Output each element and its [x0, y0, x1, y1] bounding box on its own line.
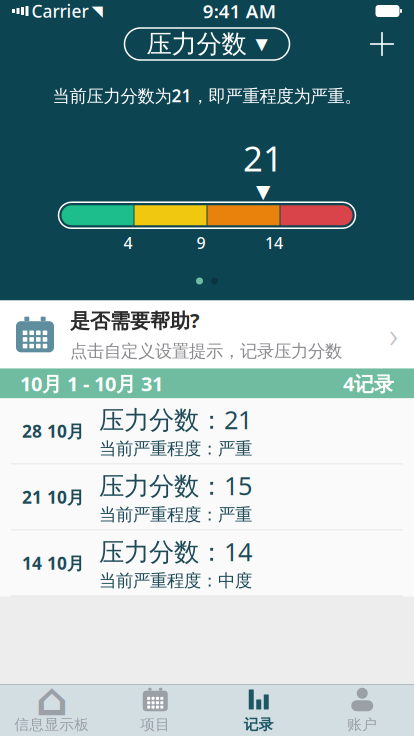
button[interactable]: 28 10月: [0, 398, 414, 463]
staticText: ▼: [255, 35, 267, 53]
staticText: 21 10月: [22, 485, 84, 508]
button[interactable]: 压力分数: [124, 28, 289, 60]
button[interactable]: 21 10月: [0, 464, 414, 529]
staticText: 是否需要帮助?: [70, 307, 200, 334]
staticText: 记录: [244, 715, 274, 733]
staticText: 14 10月: [22, 551, 84, 574]
staticText: 28 10月: [22, 419, 84, 442]
staticText: ⌂: [36, 674, 68, 725]
staticText: 4: [123, 232, 132, 253]
staticText: ›: [389, 311, 398, 357]
staticText: 14: [265, 232, 283, 253]
staticText: 信息显示板: [14, 715, 89, 733]
staticText: 当前压力分数为21，即严重程度为严重。: [52, 84, 361, 107]
button[interactable]: ⌂: [0, 684, 103, 735]
staticText: 压力分数：21: [99, 402, 252, 436]
staticText: 压力分数：14: [99, 534, 252, 568]
staticText: 当前严重程度：中度: [99, 570, 252, 591]
staticText: 项目: [140, 715, 170, 733]
staticText: Carrier: [31, 0, 88, 22]
staticText: 当前严重程度：严重: [99, 438, 252, 459]
staticText: 点击自定义设置提示，记录压力分数: [70, 341, 342, 362]
staticText: 9: [196, 232, 205, 253]
button[interactable]: 14 10月: [0, 530, 414, 595]
staticText: 压力分数: [146, 28, 246, 59]
staticText: 9:41 AM: [203, 0, 276, 23]
button[interactable]: 是否需要帮助?: [0, 300, 414, 368]
staticText: 压力分数：15: [99, 468, 252, 502]
staticText: ◥: [91, 3, 102, 19]
button[interactable]: 记录: [207, 684, 310, 735]
staticText: 21: [243, 135, 283, 181]
staticText: 当前严重程度：严重: [99, 504, 252, 525]
staticText: 账户: [347, 715, 377, 733]
button[interactable]: Add record: [360, 22, 404, 66]
staticText: 4记录: [343, 370, 394, 397]
staticText: 10月 1 - 10月 31: [20, 370, 163, 397]
staticText: ▼: [256, 181, 270, 202]
button[interactable]: 项目: [103, 684, 207, 735]
button[interactable]: 账户: [310, 684, 414, 735]
